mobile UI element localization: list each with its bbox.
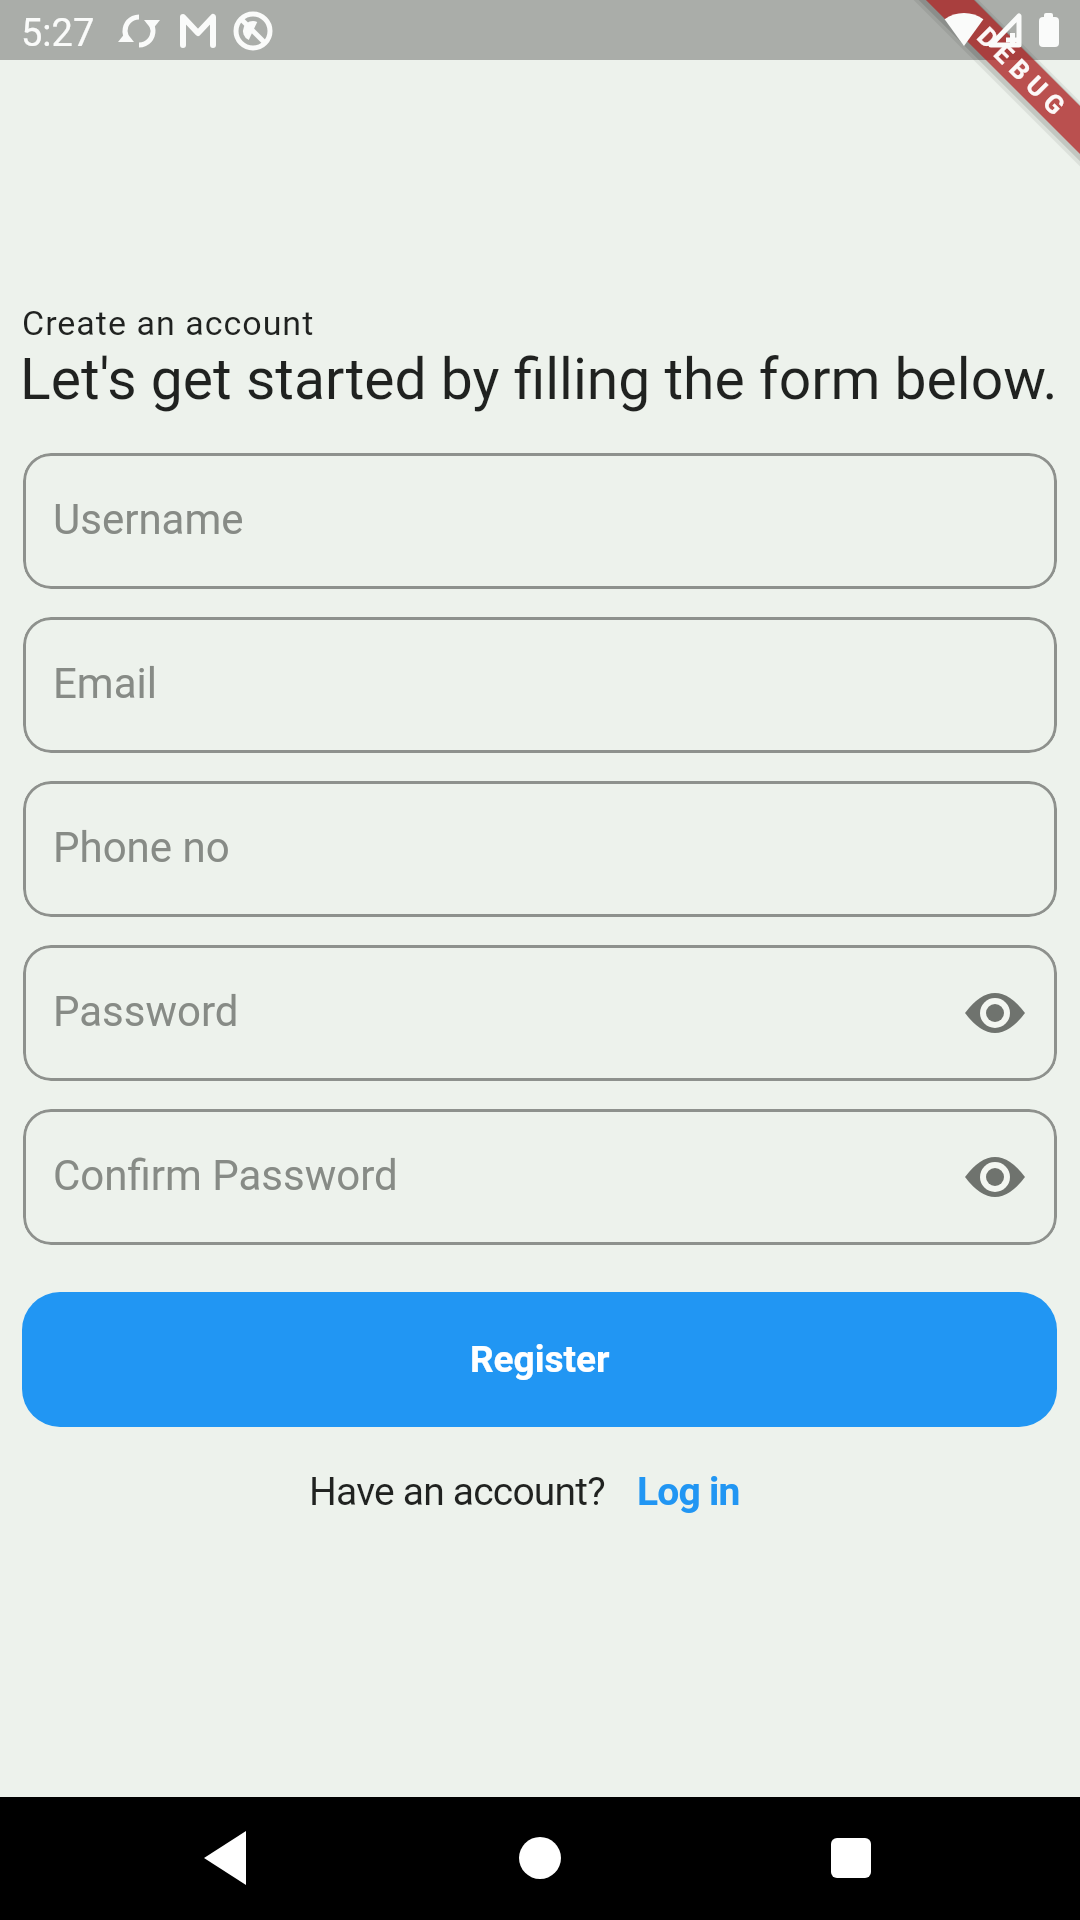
- button[interactable]: Register: [22, 1292, 1057, 1427]
- staticText: Register: [470, 1338, 610, 1381]
- staticText: Email: [53, 659, 157, 708]
- staticText: Phone no: [53, 823, 230, 872]
- staticText: Username: [53, 495, 244, 544]
- button[interactable]: Password: [23, 945, 1057, 1081]
- button[interactable]: Phone no: [23, 781, 1057, 917]
- button[interactable]: Log in: [637, 1469, 740, 1515]
- button[interactable]: Email: [23, 617, 1057, 753]
- button[interactable]: Username: [23, 453, 1057, 589]
- staticText: Have an account?: [309, 1469, 605, 1515]
- staticText: Create an account: [22, 303, 315, 343]
- staticText: 5:27: [21, 11, 95, 56]
- staticText: Password: [53, 987, 239, 1036]
- button[interactable]: [964, 1155, 1026, 1199]
- staticText: Let's get started by filling the form be…: [20, 346, 1058, 413]
- button[interactable]: [964, 991, 1026, 1035]
- button[interactable]: Confirm Password: [23, 1109, 1057, 1245]
- staticText: Confirm Password: [53, 1151, 398, 1200]
- staticText: DEBUG: [971, 21, 1076, 126]
